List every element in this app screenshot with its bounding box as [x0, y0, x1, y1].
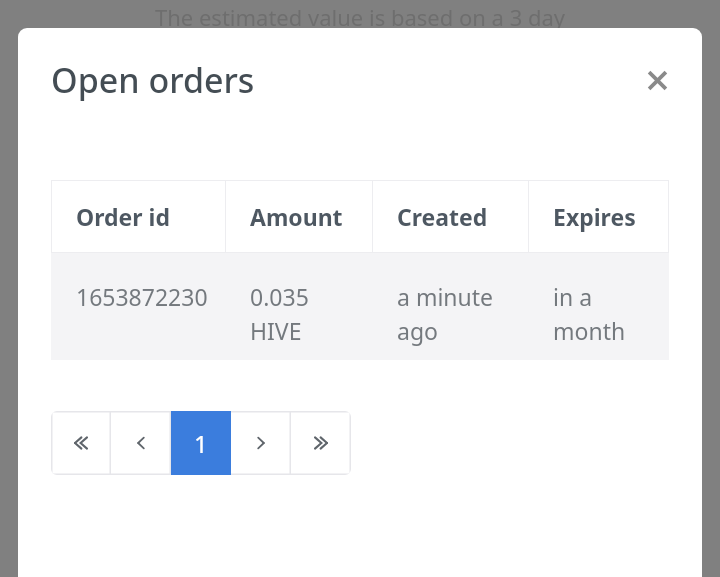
button[interactable]: 1 [171, 411, 231, 475]
staticText: 0.035 [250, 281, 309, 312]
staticText: 1653872230 [76, 281, 208, 312]
staticText: HIVE [250, 315, 302, 346]
staticText: The estimated value is based on a 3 day [155, 2, 566, 32]
button[interactable]: Page navigation [111, 411, 171, 475]
staticText: Created [397, 201, 488, 232]
staticText: Amount [250, 201, 343, 232]
staticText: a minute [397, 281, 494, 312]
staticText: in a [553, 281, 593, 312]
staticText: Expires [553, 201, 636, 232]
staticText: month [553, 315, 626, 346]
button[interactable]: Close [635, 58, 679, 102]
staticText: Order id [76, 201, 170, 232]
staticText: ago [397, 315, 438, 346]
button[interactable]: Page navigation [231, 411, 291, 475]
button[interactable]: Page navigation [51, 411, 111, 475]
staticText: 1 [194, 427, 208, 460]
button[interactable]: Page navigation [291, 411, 351, 475]
staticText: Open orders [51, 57, 255, 103]
